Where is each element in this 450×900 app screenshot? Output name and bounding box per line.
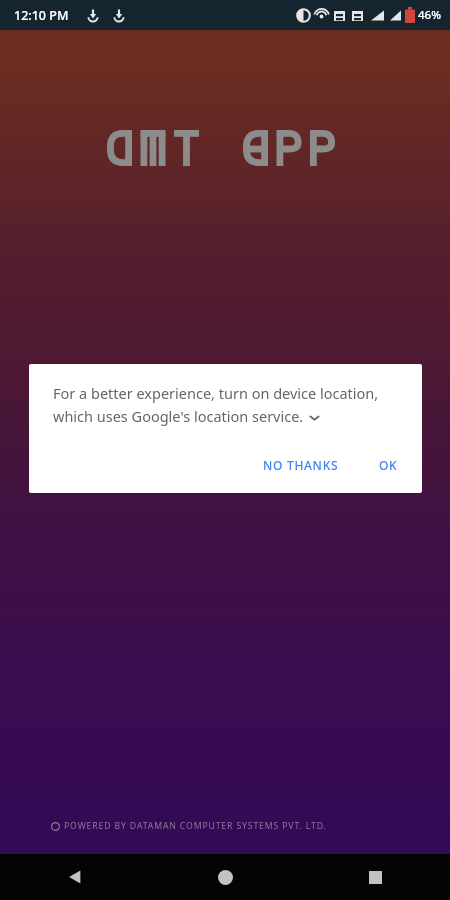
button[interactable]: NO THANKS bbox=[253, 449, 349, 481]
button[interactable]: Back bbox=[0, 854, 150, 900]
staticText: OK bbox=[379, 457, 398, 473]
staticText: 46% bbox=[418, 7, 441, 23]
button[interactable]: Recent apps bbox=[300, 854, 450, 900]
staticText: For a better experience, turn on device … bbox=[53, 383, 379, 403]
staticText: 12:10 PM bbox=[14, 7, 69, 24]
button[interactable]: Home bbox=[150, 854, 300, 900]
button[interactable]: OK bbox=[369, 449, 408, 481]
staticText: POWERED BY DATAMAN COMPUTER SYSTEMS PVT.… bbox=[64, 820, 327, 832]
staticText: NO THANKS bbox=[263, 457, 339, 473]
staticText: which uses Google's location service. bbox=[53, 406, 304, 426]
